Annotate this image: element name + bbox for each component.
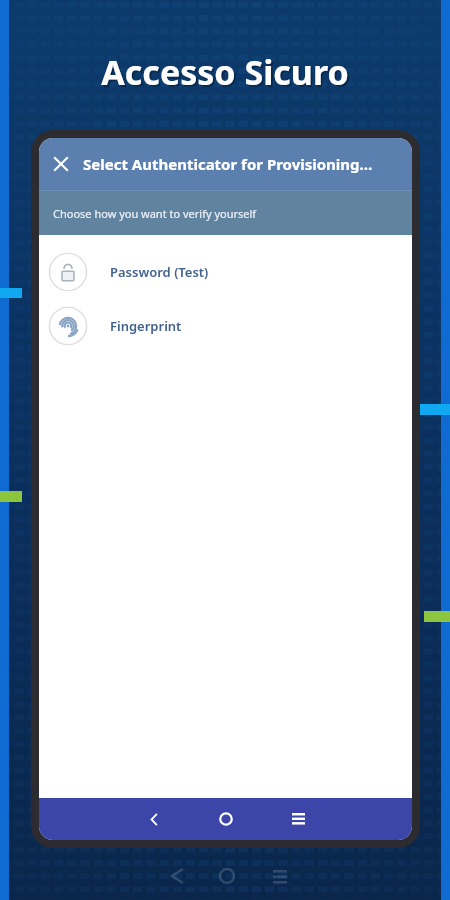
button[interactable]: Password (Test) xyxy=(39,245,412,299)
button[interactable]: Fingerprint xyxy=(39,299,412,353)
staticText: Fingerprint xyxy=(110,317,182,335)
staticText: Accesso Sicuro xyxy=(101,49,349,95)
button[interactable]: Home xyxy=(190,798,262,840)
staticText: Choose how you want to verify yourself xyxy=(53,206,257,221)
button[interactable]: Back xyxy=(118,798,190,840)
button[interactable]: Close xyxy=(39,142,83,186)
staticText: Select Authenticator for Provisioning… xyxy=(83,154,373,174)
button[interactable]: Recent apps xyxy=(262,798,334,840)
staticText: Accesso Sicuro xyxy=(103,51,351,97)
staticText: Password (Test) xyxy=(110,263,209,281)
